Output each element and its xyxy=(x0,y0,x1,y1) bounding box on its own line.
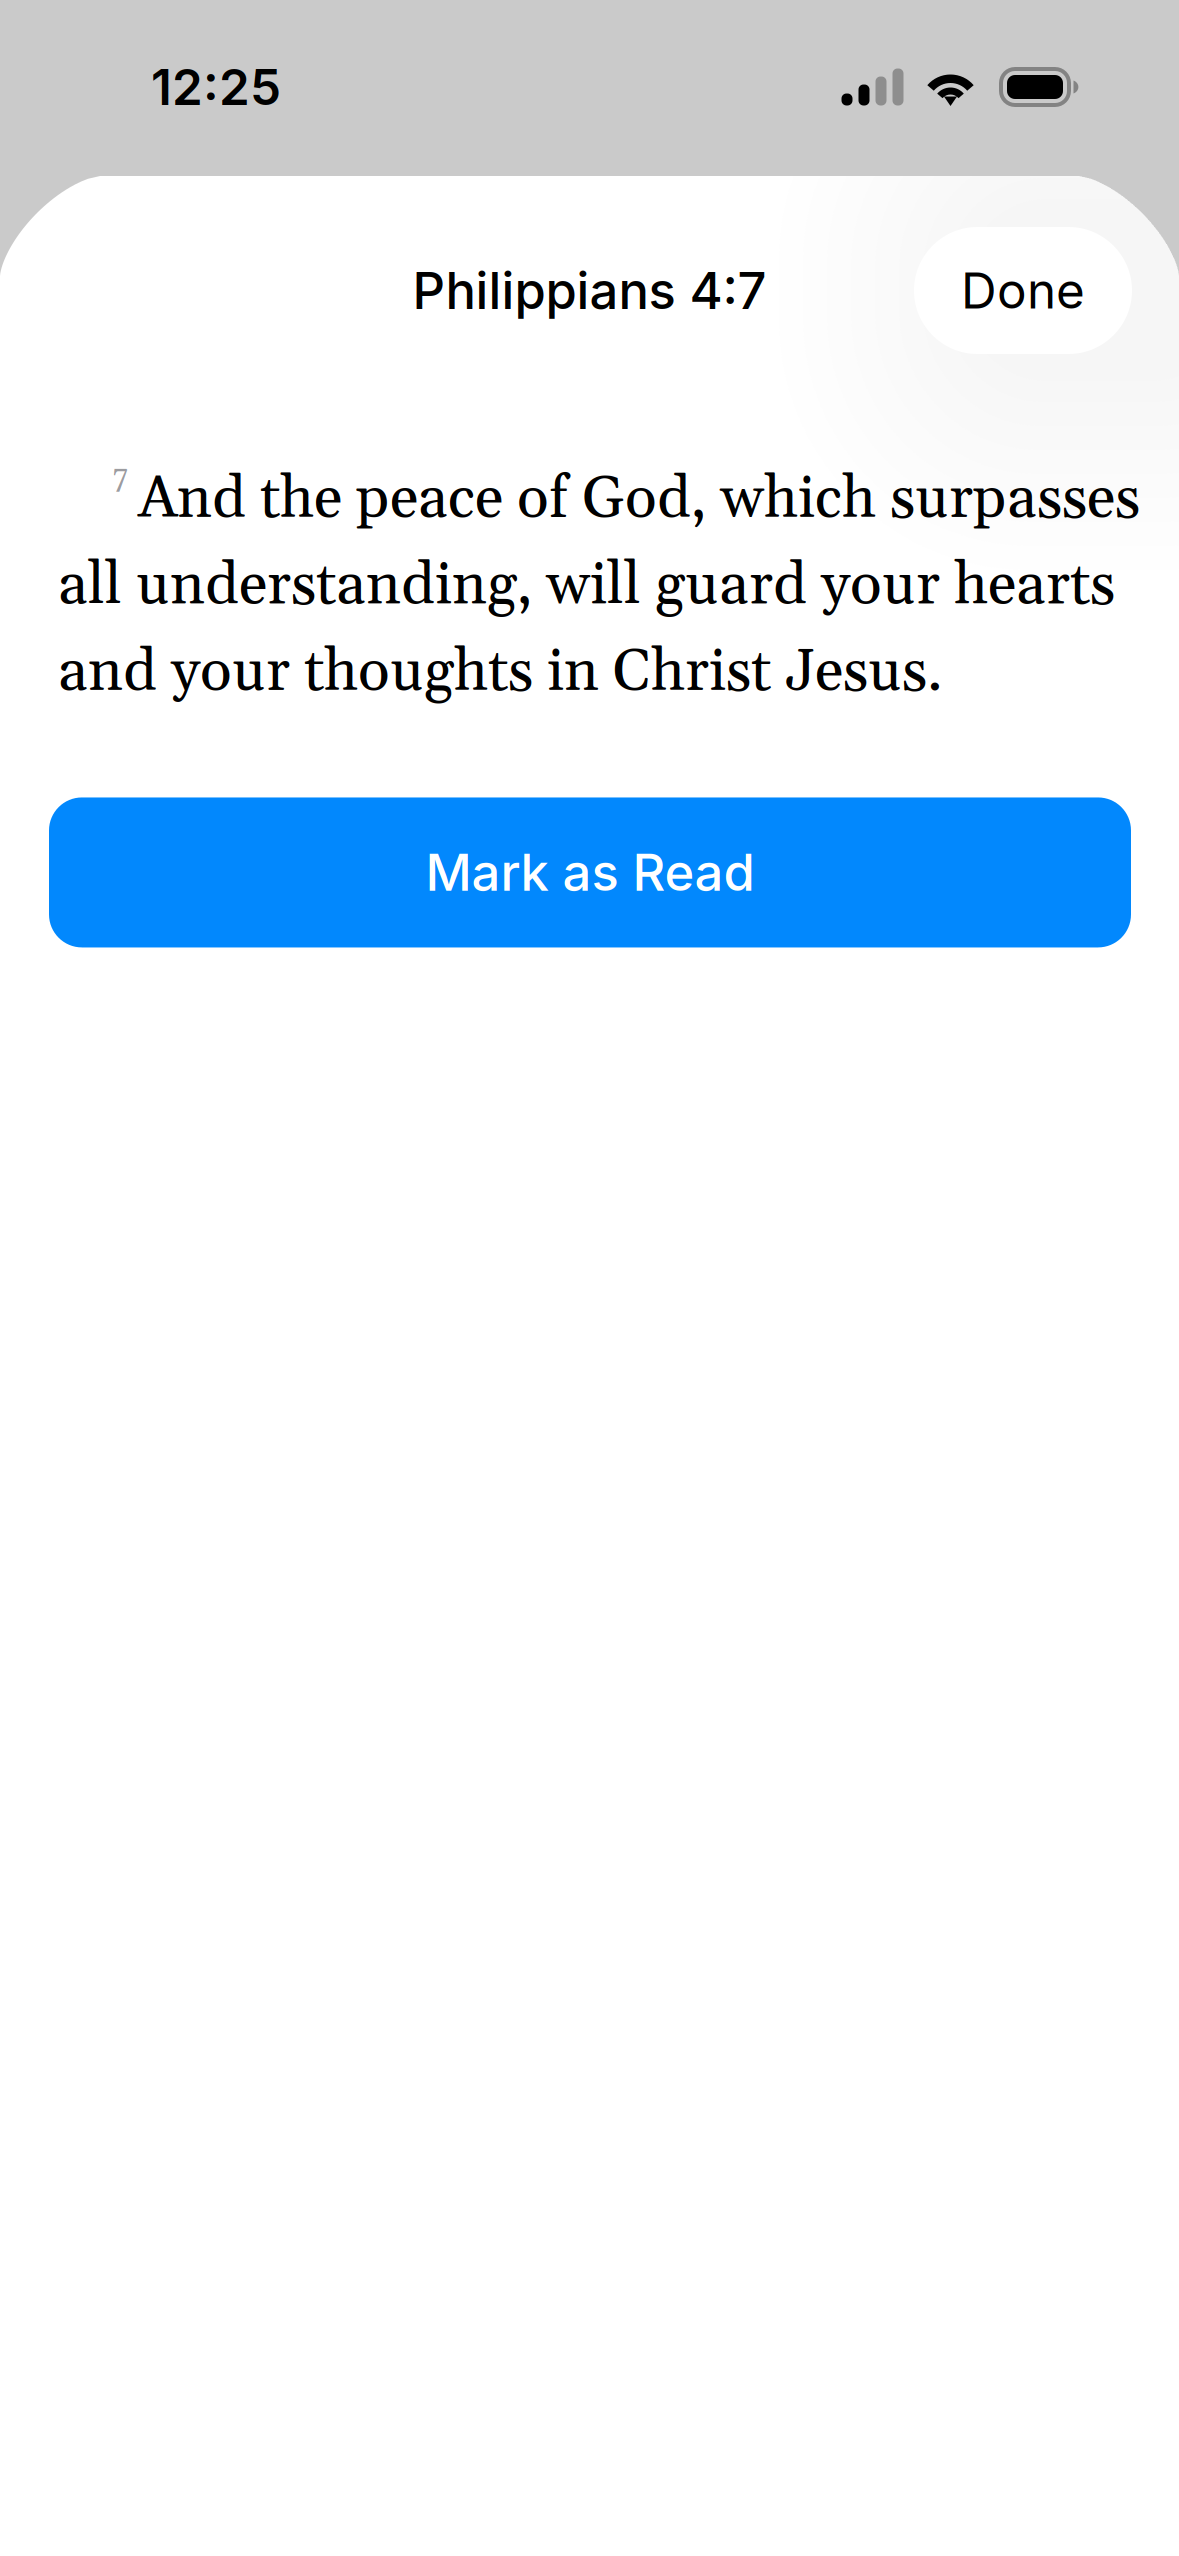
staticText: 12:25 xyxy=(151,57,281,117)
staticText: Mark as Read xyxy=(425,842,754,903)
staticText: 7 xyxy=(113,459,128,496)
button[interactable]: Done xyxy=(914,227,1132,354)
staticText: Done xyxy=(961,261,1085,320)
staticText: Philippians 4:7 xyxy=(412,260,766,321)
staticText: And the peace of God, which surpasses al… xyxy=(58,462,1140,709)
button[interactable]: Mark as Read xyxy=(49,797,1131,947)
